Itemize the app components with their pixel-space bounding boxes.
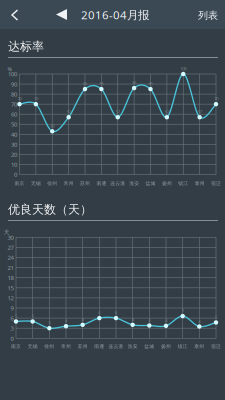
button[interactable]: 列表 <box>191 0 223 29</box>
staticText: 盐城 <box>145 180 155 186</box>
staticText: 6 <box>10 314 13 322</box>
staticText: 扬州 <box>161 343 171 349</box>
staticText: 无锡 <box>31 180 41 186</box>
staticText: 常州 <box>64 180 74 186</box>
staticText: 100 <box>180 66 186 71</box>
staticText: 徐州 <box>44 343 54 349</box>
staticText: 宿迁 <box>211 343 221 349</box>
staticText: 20 <box>11 150 17 158</box>
staticText: 30 <box>7 233 13 241</box>
staticText: 40 <box>11 130 17 138</box>
staticText: 连云港 <box>108 343 123 349</box>
staticText: 70 <box>17 96 21 101</box>
staticText: 85 <box>148 81 152 86</box>
staticText: 12 <box>7 294 13 302</box>
staticText: 3 <box>48 320 50 326</box>
staticText: 18 <box>7 274 13 282</box>
staticText: 4 <box>165 317 167 323</box>
staticText: 3 <box>10 324 13 332</box>
staticText: 扬州 <box>162 180 172 186</box>
staticText: 天 <box>4 229 9 235</box>
staticText: 4 <box>82 316 84 322</box>
staticText: 90 <box>11 80 17 88</box>
staticText: 43 <box>50 123 54 129</box>
staticText: 无锡 <box>28 343 38 349</box>
staticText: 30 <box>11 140 17 148</box>
staticText: 4 <box>198 318 200 324</box>
staticText: 6 <box>98 310 100 315</box>
staticText: 泰州 <box>195 180 205 186</box>
staticText: 60 <box>11 110 17 118</box>
staticText: 21 <box>7 263 13 272</box>
staticText: 徐州 <box>47 180 57 186</box>
staticText: 淮安 <box>129 180 139 186</box>
staticText: 5 <box>215 314 217 320</box>
staticText: 泰州 <box>194 343 204 349</box>
staticText: 优良天数（天） <box>8 202 92 217</box>
staticText: 6 <box>115 310 117 315</box>
staticText: 盐城 <box>144 343 154 349</box>
staticText: 5 <box>15 313 17 319</box>
staticText: 0 <box>10 334 13 342</box>
staticText: 10 <box>11 160 17 169</box>
staticText: % <box>7 65 11 73</box>
staticText: 24 <box>7 253 13 262</box>
staticText: 南通 <box>96 180 106 186</box>
staticText: 淮安 <box>128 343 138 349</box>
staticText: 4 <box>132 316 134 322</box>
staticText: 27 <box>7 243 13 251</box>
staticText: 57 <box>198 109 202 115</box>
staticText: 70 <box>34 96 38 101</box>
staticText: 9 <box>10 304 13 312</box>
staticText: 4 <box>65 318 67 324</box>
staticText: 70 <box>11 100 17 108</box>
staticText: 南京 <box>14 180 24 186</box>
staticText: 0 <box>14 170 17 179</box>
staticText: 57 <box>165 109 169 115</box>
staticText: 列表 <box>198 9 218 22</box>
staticText: 4 <box>148 317 150 323</box>
staticText: 50 <box>11 120 17 128</box>
staticText: 15 <box>7 284 13 292</box>
staticText: 5 <box>32 313 34 319</box>
staticText: 南通 <box>94 343 104 349</box>
staticText: 连云港 <box>110 180 125 186</box>
staticText: 7 <box>182 308 184 313</box>
staticText: 苏州 <box>78 343 88 349</box>
staticText: 86 <box>132 80 136 85</box>
staticText: 57 <box>116 109 120 115</box>
staticText: 宿迁 <box>211 180 221 186</box>
button[interactable]: Previous month <box>55 0 79 29</box>
staticText: 100 <box>8 70 17 78</box>
button[interactable]: Back <box>0 0 29 29</box>
staticText: 苏州 <box>80 180 90 186</box>
staticText: 达标率 <box>8 39 44 54</box>
staticText: 镇江 <box>178 180 188 186</box>
staticText: 85 <box>83 81 87 86</box>
staticText: 80 <box>11 90 17 98</box>
staticText: 镇江 <box>178 343 188 349</box>
staticText: 常州 <box>61 343 71 349</box>
staticText: 南京 <box>11 343 21 349</box>
staticText: 2016-04月报 <box>81 7 149 23</box>
staticText: 70 <box>214 96 218 101</box>
staticText: 57 <box>67 109 71 115</box>
staticText: 85 <box>99 81 103 86</box>
